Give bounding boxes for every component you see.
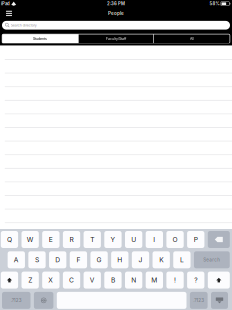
staticText: D: [55, 256, 60, 264]
button[interactable]: L: [173, 251, 190, 268]
staticText: Z: [28, 276, 32, 284]
staticText: E: [49, 235, 53, 244]
staticText: Q: [7, 235, 12, 244]
button[interactable]: T: [84, 231, 101, 248]
staticText: M: [151, 276, 157, 284]
button[interactable]: W: [21, 231, 39, 248]
button[interactable]: M: [146, 272, 163, 289]
button[interactable]: H: [111, 251, 128, 268]
staticText: U: [131, 235, 136, 244]
button[interactable]: Search directory: [2, 21, 230, 30]
staticText: L: [180, 256, 184, 264]
staticText: People: [108, 11, 124, 16]
staticText: !: [174, 276, 176, 284]
button[interactable]: .?123: [190, 292, 208, 309]
button[interactable]: Z: [21, 272, 39, 289]
staticText: iPad: [1, 1, 10, 6]
button[interactable]: Y: [104, 231, 122, 248]
button[interactable]: J: [132, 251, 149, 268]
button[interactable]: F: [70, 251, 87, 268]
button[interactable]: Hide keyboard: [211, 292, 228, 309]
button[interactable]: Faculty/Staff: [79, 34, 153, 43]
staticText: H: [117, 256, 122, 264]
button[interactable]: .?123: [2, 292, 30, 309]
staticText: S: [35, 256, 39, 264]
staticText: 58%: [210, 1, 220, 6]
button[interactable]: D: [49, 251, 66, 268]
button[interactable]: V: [84, 272, 101, 289]
button[interactable]: P: [187, 231, 204, 248]
staticText: I: [153, 235, 155, 244]
staticText: [119, 285, 125, 310]
button[interactable]: S: [28, 251, 46, 268]
staticText: V: [90, 276, 95, 284]
button[interactable]: N: [125, 272, 142, 289]
button[interactable]: I: [146, 231, 163, 248]
button[interactable]: A: [8, 251, 25, 268]
button[interactable]: Menu: [0, 7, 17, 19]
button[interactable]: G: [90, 251, 108, 268]
staticText: T: [90, 235, 94, 244]
staticText: A: [14, 256, 19, 264]
staticText: K: [159, 256, 163, 264]
staticText: N: [131, 276, 136, 284]
staticText: B: [111, 276, 115, 284]
button[interactable]: Q: [1, 231, 18, 248]
staticText: O: [172, 235, 177, 244]
staticText: W: [27, 235, 34, 244]
button[interactable]: E: [42, 231, 59, 248]
staticText: .?123: [11, 298, 22, 303]
staticText: ?: [194, 276, 197, 284]
staticText: R: [69, 235, 73, 244]
staticText: .?123: [193, 298, 204, 303]
staticText: All: [190, 37, 194, 41]
staticText: Students: [33, 37, 47, 41]
button[interactable]: X: [42, 272, 59, 289]
staticText: Y: [110, 235, 115, 244]
button[interactable]: Delete: [208, 231, 230, 248]
button[interactable]: U: [125, 231, 142, 248]
staticText: X: [48, 276, 53, 284]
button[interactable]: ?: [187, 272, 204, 289]
button[interactable]: Students: [2, 34, 78, 43]
staticText: G: [97, 256, 102, 264]
button[interactable]: R: [63, 231, 80, 248]
staticText: Faculty/Staff: [106, 37, 126, 41]
staticText: J: [138, 256, 142, 264]
button[interactable]: Search: [194, 251, 230, 268]
staticText: Search: [203, 257, 220, 263]
button[interactable]: B: [104, 272, 122, 289]
button[interactable]: All: [154, 34, 230, 43]
staticText: P: [194, 235, 198, 244]
button[interactable]: Shift: [1, 272, 18, 289]
button[interactable]: Shift: [208, 272, 230, 289]
button[interactable]: K: [153, 251, 170, 268]
button[interactable]: !: [166, 272, 184, 289]
staticText: C: [69, 276, 74, 284]
button[interactable]: C: [63, 272, 80, 289]
button[interactable]: O: [166, 231, 184, 248]
button[interactable]: Next keyboard: [34, 292, 53, 309]
staticText: Search directory: [11, 23, 37, 27]
staticText: F: [76, 256, 80, 264]
staticText: 2:36 PM: [107, 1, 125, 6]
